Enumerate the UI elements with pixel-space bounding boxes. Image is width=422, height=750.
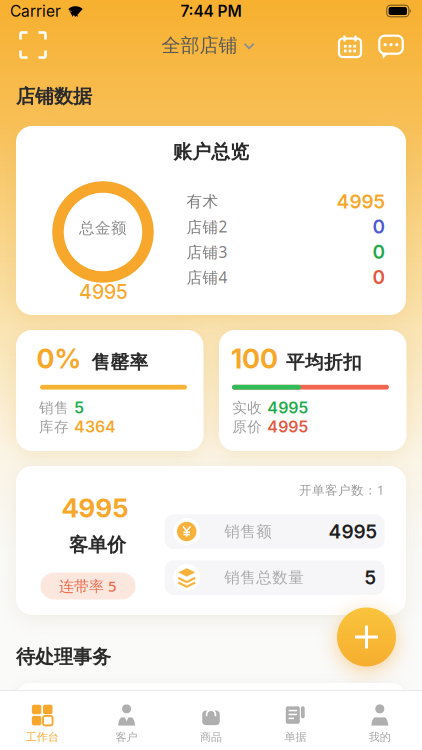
staticText: 5 — [74, 398, 84, 417]
staticText: 库存 — [39, 418, 69, 436]
staticText: Carrier — [10, 2, 61, 20]
button[interactable]: 日历 — [334, 31, 366, 61]
staticText: 平均折扣 — [286, 351, 362, 374]
button[interactable]: 新建 — [337, 607, 396, 666]
button[interactable]: 单据 — [253, 698, 337, 750]
staticText: 客单价 — [69, 533, 126, 557]
staticText: 7:44 PM — [180, 2, 241, 20]
staticText: 店铺2 — [186, 216, 227, 237]
staticText: 连带率 5 — [59, 576, 117, 596]
staticText: 100 — [231, 342, 278, 375]
staticText: 总金额 — [79, 218, 127, 238]
button[interactable]: 扫一扫 — [14, 26, 51, 63]
staticText: 账户总览 — [173, 140, 249, 164]
staticText: 0 — [372, 215, 385, 238]
staticText: 全部店铺 — [161, 33, 237, 57]
staticText: 客户 — [116, 730, 138, 744]
staticText: 待处理事务 — [16, 645, 111, 669]
staticText: 0% — [36, 342, 81, 375]
staticText: 店铺4 — [186, 267, 227, 288]
staticText: 销售额 — [224, 522, 272, 541]
staticText: 开单客户数：1 — [299, 481, 384, 498]
button[interactable]: 客户 — [85, 698, 169, 750]
staticText: 4995 — [79, 280, 128, 304]
staticText: 销售总数量 — [224, 568, 304, 587]
staticText: 4995 — [336, 190, 385, 213]
staticText: 4995 — [328, 520, 377, 543]
button[interactable]: 全部店铺 — [161, 33, 254, 57]
staticText: 实收 — [232, 399, 262, 417]
button[interactable]: 商品 — [169, 698, 253, 750]
staticText: 4364 — [74, 417, 116, 436]
staticText: 4995 — [267, 417, 308, 436]
staticText: 售罄率 — [91, 351, 148, 374]
staticText: 有术 — [186, 192, 218, 211]
button[interactable]: 我的 — [338, 698, 422, 750]
staticText: 原价 — [232, 418, 262, 436]
staticText: 我的 — [369, 730, 391, 744]
staticText: 4995 — [267, 398, 308, 417]
staticText: 工作台 — [26, 730, 59, 744]
button[interactable]: 工作台 — [0, 698, 84, 750]
staticText: 5 — [364, 566, 376, 589]
staticText: 销售 — [39, 399, 69, 417]
staticText: 店铺数据 — [16, 84, 92, 108]
staticText: 店铺3 — [186, 241, 227, 262]
staticText: 0 — [372, 240, 385, 263]
staticText: 单据 — [284, 730, 306, 744]
staticText: 0 — [372, 266, 385, 289]
button[interactable]: 消息 — [374, 31, 407, 62]
staticText: 4995 — [61, 492, 128, 524]
staticText: 商品 — [200, 730, 222, 744]
